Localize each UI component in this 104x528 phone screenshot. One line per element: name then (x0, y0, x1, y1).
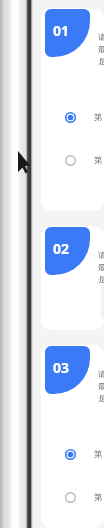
staticText: 第一项 (94, 449, 104, 460)
staticText: 第二项 (94, 492, 104, 503)
button[interactable]: 02 (41, 226, 104, 330)
staticText: 第一项 (94, 112, 104, 123)
button[interactable]: 第二项 (41, 155, 104, 166)
staticText: 请问您平常 最常使用的 是哪一种？ (98, 32, 104, 66)
staticText: 01 (53, 21, 70, 40)
staticText: 第二项 (94, 155, 104, 166)
button[interactable] (101, 285, 104, 319)
staticText: 02 (53, 239, 70, 258)
button[interactable]: 03 (41, 345, 104, 528)
staticText: 请问您平常 最常使用的 是哪一种？ (98, 250, 104, 284)
button[interactable]: 第二项 (41, 492, 104, 503)
staticText: 03 (53, 358, 70, 377)
button[interactable]: 第一项 (41, 112, 104, 123)
staticText: 请问您平常 最常使用的 是哪一种？ (98, 369, 104, 403)
button[interactable]: 01 (41, 8, 104, 211)
button[interactable]: 第一项 (41, 449, 104, 460)
